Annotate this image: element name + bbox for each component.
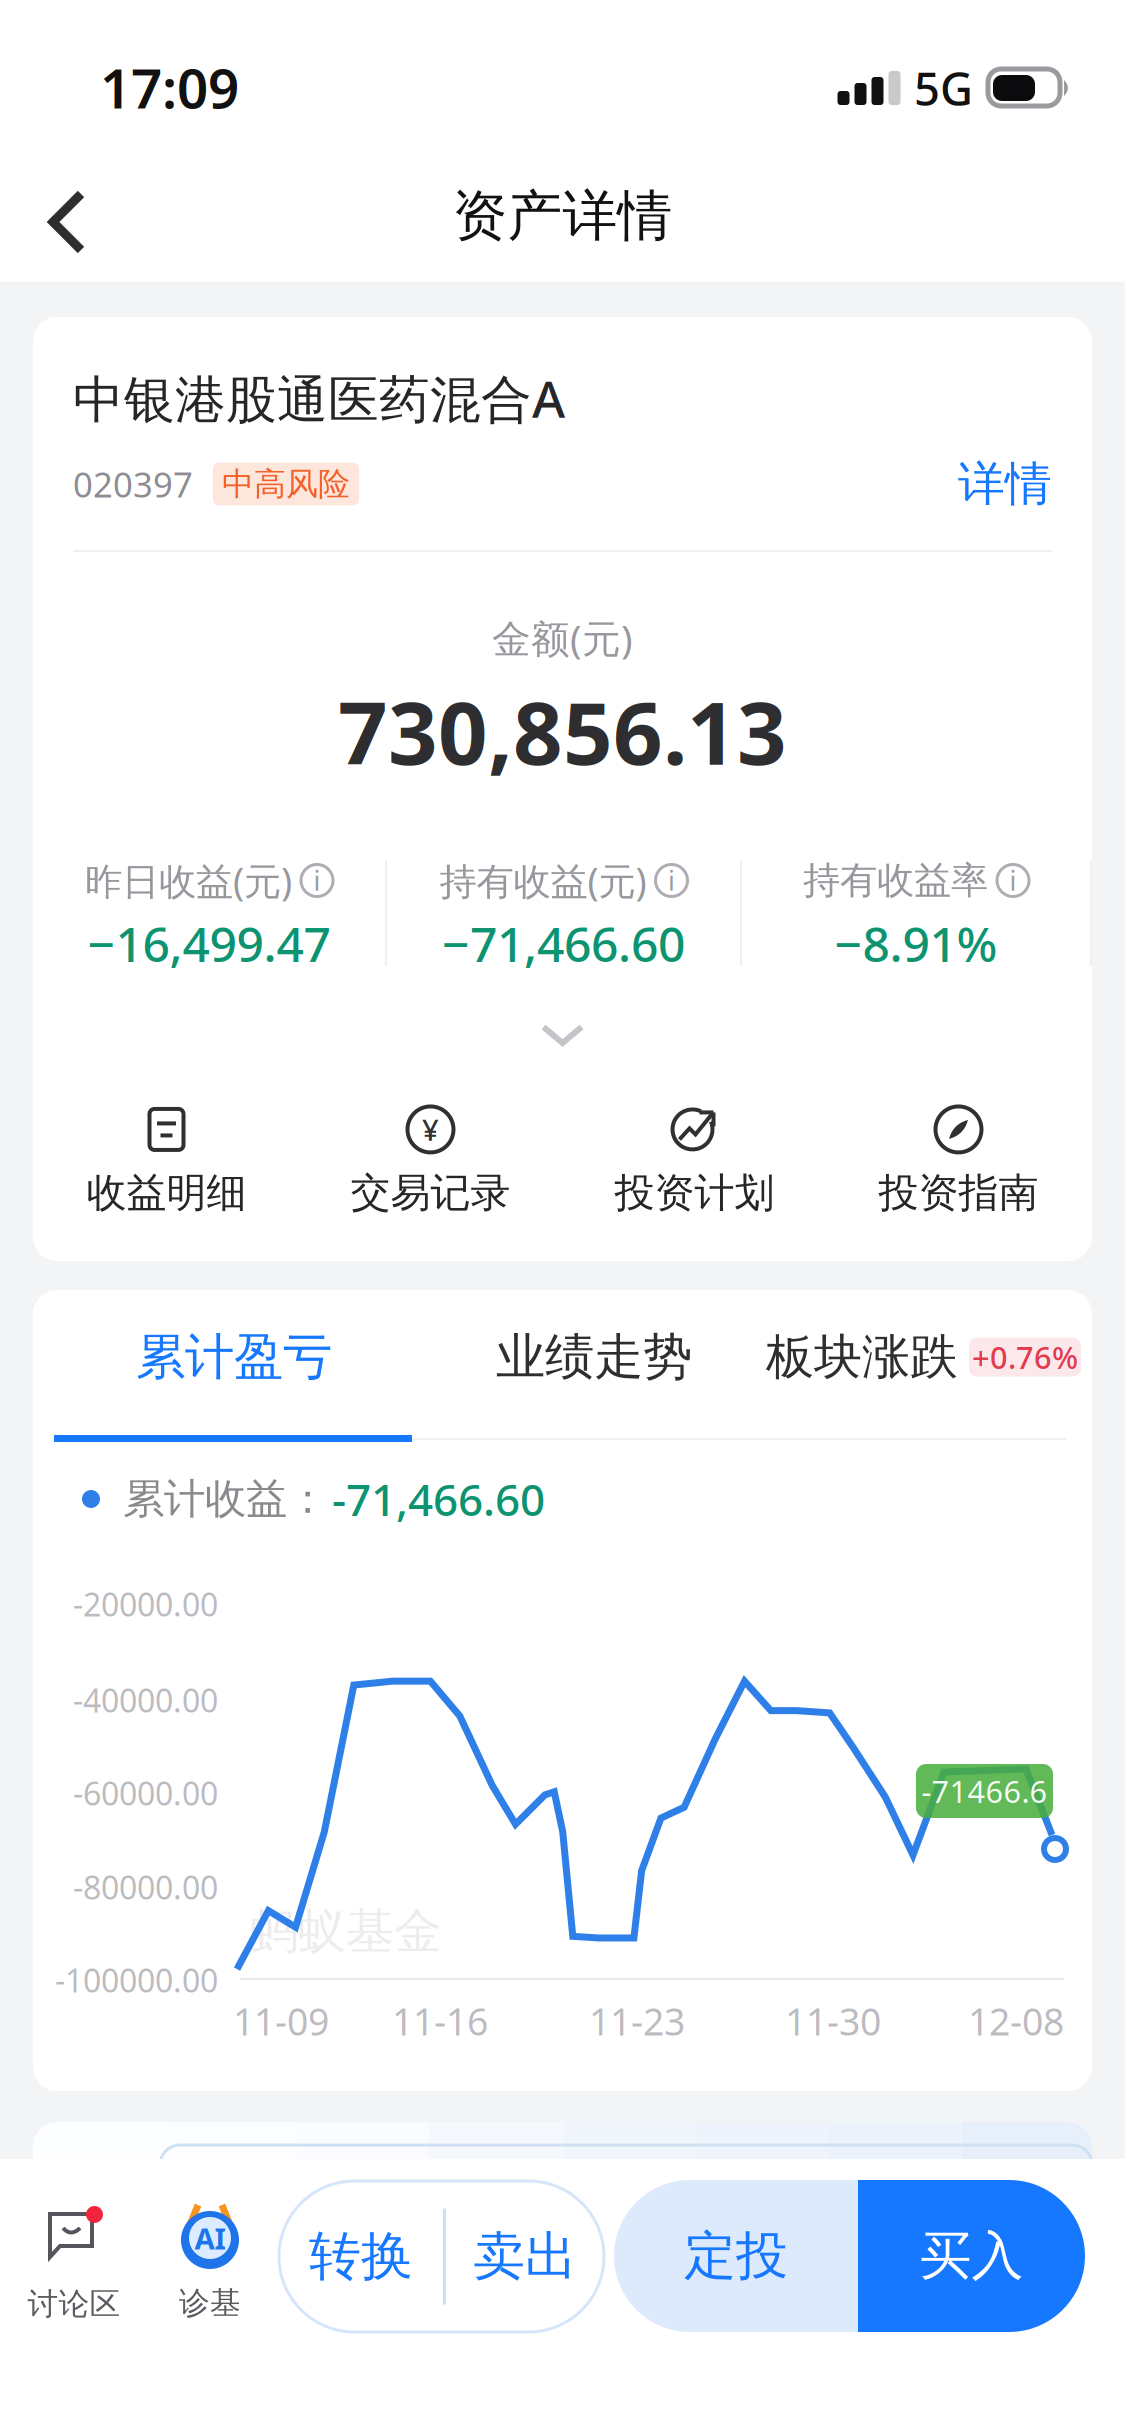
staticText: 定投 — [684, 2224, 788, 2288]
button[interactable]: 投资指南 — [826, 1092, 1090, 1232]
staticText: 诊基 — [179, 2284, 241, 2322]
staticText: 昨日收益(元) — [85, 856, 292, 905]
staticText: 11-09 — [233, 1996, 329, 2046]
button[interactable]: 业绩走势 — [454, 1320, 734, 1394]
staticText: −8.91% — [834, 912, 997, 975]
button[interactable]: 投资计划 — [562, 1092, 826, 1232]
button[interactable]: ¥ — [298, 1092, 562, 1232]
button[interactable]: 讨论区 — [14, 2205, 134, 2321]
staticText: 730,856.13 — [338, 673, 787, 789]
staticText: 17:09 — [100, 51, 239, 124]
staticText: 持有收益率 — [803, 858, 988, 903]
button[interactable]: 收益明细 — [34, 1092, 298, 1232]
staticText: 020397 — [73, 461, 193, 507]
staticText: ¥ — [422, 1110, 439, 1149]
staticText: −71,466.60 — [442, 912, 685, 975]
staticText: -71,466.60 — [332, 1470, 545, 1528]
staticText: 业绩走势 — [496, 1327, 692, 1387]
staticText: 5G — [914, 58, 973, 118]
staticText: -20000.00 — [73, 1583, 218, 1625]
staticText: 板块涨跌 — [766, 1327, 958, 1386]
staticText: 转换 — [309, 2225, 413, 2288]
staticText: 11-30 — [785, 1996, 881, 2046]
staticText: AI — [194, 2218, 225, 2257]
staticText: 累计盈亏 — [136, 1327, 332, 1387]
staticText: -80000.00 — [73, 1866, 218, 1908]
staticText: 累计收益： — [123, 1474, 328, 1524]
button[interactable]: 板块涨跌 — [766, 1320, 1086, 1394]
staticText: 交易记录 — [350, 1168, 510, 1217]
staticText: 投资计划 — [614, 1168, 774, 1217]
staticText: 详情 — [958, 455, 1052, 513]
button[interactable]: 定投 — [614, 2180, 858, 2332]
staticText: 收益明细 — [86, 1168, 246, 1217]
staticText: -60000.00 — [73, 1772, 218, 1814]
staticText: i — [313, 863, 320, 898]
button[interactable]: 卖出 — [446, 2181, 604, 2332]
button[interactable]: AI — [150, 2195, 270, 2321]
staticText: 蚂蚁基金 — [250, 1902, 442, 1961]
staticText: +0.76% — [972, 1337, 1078, 1377]
staticText: 讨论区 — [27, 2285, 120, 2323]
staticText: 资产详情 — [452, 182, 672, 249]
staticText: 中高风险 — [222, 464, 350, 504]
button[interactable]: 买入 — [858, 2180, 1085, 2332]
button[interactable]: 转换 — [279, 2181, 443, 2332]
staticText: 金额(元) — [492, 612, 633, 664]
button[interactable]: 返回 — [28, 170, 110, 274]
staticText: -40000.00 — [73, 1679, 218, 1721]
staticText: 买入 — [919, 2224, 1023, 2288]
staticText: 中银港股通医药混合A — [73, 364, 565, 432]
staticText: 12-08 — [968, 1996, 1064, 2046]
staticText: 投资指南 — [878, 1168, 1038, 1217]
staticText: 持有收益(元) — [439, 856, 646, 905]
staticText: i — [1009, 863, 1016, 898]
staticText: 11-16 — [392, 1996, 488, 2046]
staticText: −16,499.47 — [87, 912, 330, 975]
button[interactable]: 详情 — [958, 456, 1052, 512]
staticText: i — [668, 863, 675, 898]
staticText: 卖出 — [473, 2225, 577, 2288]
staticText: 11-23 — [589, 1996, 685, 2046]
staticText: -100000.00 — [55, 1959, 218, 2001]
staticText: -71466.6 — [921, 1771, 1047, 1811]
button[interactable]: 累计盈亏 — [94, 1320, 374, 1394]
